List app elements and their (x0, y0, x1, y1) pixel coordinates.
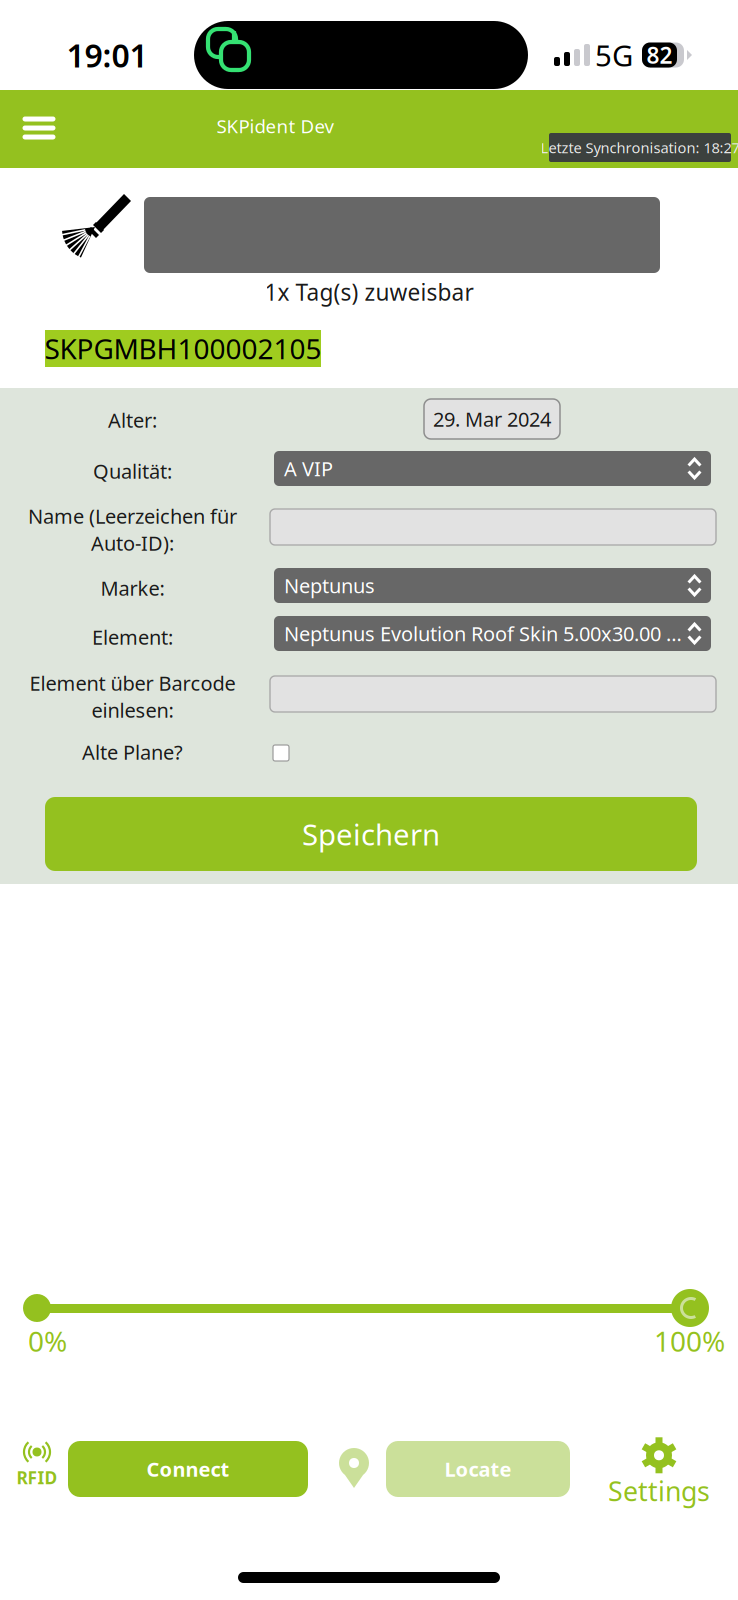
staticText: Neptunus Evolution Roof Skin 5.00x30.00 … (284, 620, 683, 647)
staticText: 1x Tag(s) zuweisbar (264, 277, 473, 307)
button[interactable]: A VIP (274, 451, 711, 486)
staticText: SKPGMBH100002105 (44, 330, 321, 367)
staticText: einlesen: (91, 697, 173, 723)
staticText: 0% (28, 1322, 67, 1360)
staticText: Settings (608, 1473, 710, 1509)
staticText: 19:01 (66, 34, 147, 76)
button[interactable]: Neptunus (274, 568, 711, 603)
button[interactable]: Settings (584, 1434, 734, 1512)
button[interactable]: Locate (386, 1441, 570, 1497)
button[interactable]: Connect (68, 1441, 308, 1497)
button[interactable]: Menu (8, 100, 70, 156)
staticText: Alter: (108, 407, 157, 433)
staticText: Speichern (302, 814, 440, 853)
staticText: Qualität: (93, 458, 172, 484)
button[interactable]: Neptunus Evolution Roof Skin 5.00x30.00 … (274, 616, 711, 651)
staticText: 5G (595, 35, 633, 74)
staticText: 100% (654, 1322, 725, 1360)
staticText: Element über Barcode (29, 670, 235, 696)
staticText: RFID (16, 1466, 57, 1489)
staticText: Alte Plane? (82, 739, 183, 765)
staticText: Auto-ID): (91, 530, 174, 556)
staticText: Name (Leerzeichen für (28, 503, 237, 529)
button[interactable]: Speichern (45, 797, 697, 871)
staticText: Element: (92, 624, 173, 650)
staticText: Locate (444, 1456, 511, 1482)
staticText: Connect (146, 1456, 229, 1482)
staticText: 82 (646, 40, 672, 70)
button[interactable]: 29. Mar 2024 (424, 399, 560, 439)
staticText: 29. Mar 2024 (433, 406, 551, 432)
staticText: Neptunus (284, 572, 375, 599)
staticText: SKPident Dev (216, 114, 333, 138)
staticText: A VIP (284, 455, 333, 482)
staticText: Marke: (100, 575, 164, 601)
staticText: Letzte Synchronisation: 18:27 (540, 138, 738, 157)
